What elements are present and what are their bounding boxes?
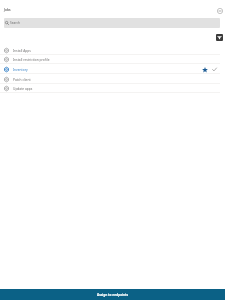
staticText: Jobs: [4, 8, 11, 12]
staticText: Update apps: [13, 87, 225, 91]
staticText: Patch client: [13, 78, 225, 82]
button[interactable]: Search: [4, 18, 220, 28]
button[interactable]: Assign to endpoints: [0, 289, 225, 300]
staticText: Install restriction profile: [13, 58, 225, 62]
staticText: Install Apps: [13, 49, 225, 53]
button[interactable]: Jobs: [2, 6, 13, 14]
button[interactable]: Collapse: [215, 6, 224, 15]
staticText: Search: [10, 21, 20, 25]
button[interactable]: Install restriction profile: [0, 55, 225, 64]
button[interactable]: Update apps: [0, 84, 225, 93]
button[interactable]: Filter: [216, 34, 223, 41]
staticText: Inventory: [13, 68, 202, 72]
staticText: Assign to endpoints: [97, 293, 129, 297]
button[interactable]: Inventory: [0, 65, 225, 74]
button[interactable]: Install Apps: [0, 46, 225, 55]
button[interactable]: Patch client: [0, 75, 225, 84]
